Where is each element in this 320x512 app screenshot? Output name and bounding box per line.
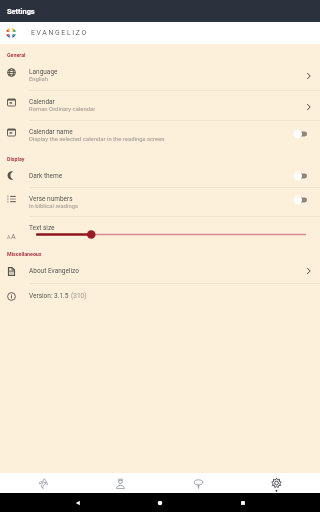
staticText: Verse numbers — [29, 195, 73, 203]
button[interactable]: A — [0, 217, 320, 247]
staticText: A — [7, 234, 11, 240]
button[interactable]: Verse numbers — [0, 188, 320, 216]
other: Open — [301, 265, 313, 277]
other: Open — [301, 70, 313, 82]
staticText: Text size — [29, 224, 55, 232]
staticText: A — [11, 232, 16, 240]
button[interactable]: Calendar — [0, 91, 320, 120]
staticText: Miscellaneous — [7, 251, 42, 257]
button[interactable]: About Evangelizo — [0, 259, 320, 283]
button[interactable]: Calendar name — [0, 121, 320, 150]
other: Dark theme toggle — [297, 170, 317, 182]
button[interactable]: Prayers — [159, 473, 237, 493]
staticText: Roman Ordinary calendar — [29, 106, 96, 113]
staticText: In biblical readings — [29, 203, 79, 210]
staticText: Settings — [7, 7, 35, 16]
staticText: Calendar name — [29, 128, 73, 136]
staticText: Version: 3.1.5 — [29, 292, 71, 300]
staticText: Dark theme — [29, 172, 63, 180]
staticText: Display the selected calendar in the rea… — [29, 136, 165, 143]
staticText: General — [7, 52, 26, 58]
button[interactable]: Readings — [5, 473, 82, 493]
staticText: Calendar — [29, 98, 55, 106]
staticText: (310) — [71, 292, 87, 300]
button[interactable]: Version: 3.1.5 — [0, 284, 320, 308]
other: Open — [301, 101, 313, 113]
other: Verse numbers toggle — [297, 194, 317, 206]
button[interactable]: Settings — [237, 473, 315, 493]
staticText: About Evangelizo — [29, 267, 79, 275]
button[interactable]: Saints — [82, 473, 159, 493]
staticText: English — [29, 76, 49, 83]
button[interactable]: Language — [0, 60, 320, 90]
staticText: EVANGELIZO — [31, 29, 88, 37]
staticText: Language — [29, 68, 58, 76]
button[interactable]: Dark theme — [0, 164, 320, 187]
other: Calendar name toggle — [297, 128, 317, 140]
staticText: Display — [7, 156, 25, 162]
